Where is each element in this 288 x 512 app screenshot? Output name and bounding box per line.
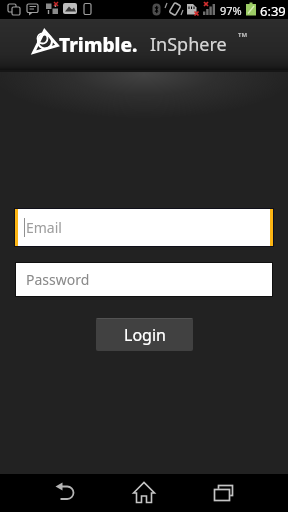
button[interactable]: Password <box>15 262 273 297</box>
button[interactable] <box>34 474 98 512</box>
staticText: 97% <box>220 3 242 18</box>
staticText: 6:39 <box>260 2 286 20</box>
staticText: TM <box>238 31 248 39</box>
button[interactable]: Email <box>14 208 274 247</box>
staticText: Email <box>26 218 62 237</box>
staticText: Trimble. <box>59 32 138 58</box>
button[interactable]: Login <box>96 318 193 351</box>
button[interactable] <box>112 474 176 512</box>
staticText: InSphere <box>150 32 227 57</box>
staticText: Login <box>124 324 166 346</box>
button[interactable] <box>192 474 256 512</box>
staticText: Password <box>26 270 90 289</box>
